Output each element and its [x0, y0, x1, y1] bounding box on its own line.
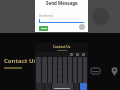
staticText: Send Message [46, 0, 78, 6]
button[interactable]: Chat [79, 24, 85, 30]
staticText: Contact Us [53, 45, 71, 49]
button[interactable]: SEND [39, 26, 48, 31]
button[interactable]: Location [109, 66, 119, 76]
button[interactable]: Keyboard tool 3 [82, 53, 85, 56]
button[interactable]: Keyboard tool 1 [70, 53, 73, 56]
button[interactable]: Key [52, 83, 73, 90]
button[interactable]: Keyboard tool 2 [76, 53, 79, 56]
staticText: I'm here to [39, 14, 54, 18]
staticText: SEND [41, 27, 47, 30]
staticText: Contact Us [4, 57, 37, 65]
button[interactable]: Key [80, 83, 87, 90]
button[interactable]: Card [90, 66, 100, 76]
button[interactable] [39, 19, 84, 23]
